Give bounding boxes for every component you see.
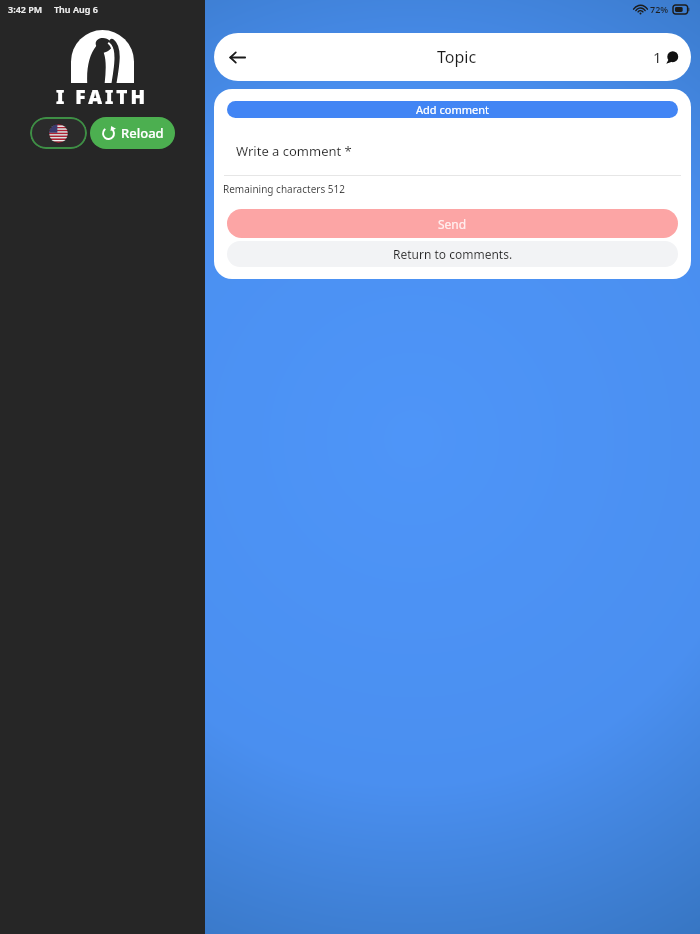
button[interactable]: Back <box>214 33 260 81</box>
staticText: Topic <box>437 46 477 68</box>
staticText: Add comment <box>416 102 489 117</box>
staticText: 3:42 PM <box>8 3 43 15</box>
staticText: 1 <box>653 47 662 67</box>
staticText: Thu Aug 6 <box>54 3 98 15</box>
button[interactable]: Change language <box>30 117 87 149</box>
staticText: Remaining characters 512 <box>223 182 345 196</box>
button[interactable]: Send <box>227 209 678 238</box>
button[interactable]: Reload <box>90 117 175 149</box>
staticText: I FAITH <box>56 84 149 110</box>
staticText: Reload <box>121 124 164 142</box>
button[interactable]: 1 <box>653 47 679 67</box>
button[interactable]: Add comment <box>227 101 678 118</box>
staticText: Send <box>438 216 467 232</box>
button[interactable]: Return to comments. <box>227 241 678 267</box>
staticText: Write a comment * <box>236 142 352 160</box>
staticText: Return to comments. <box>393 246 513 262</box>
staticText: 72% <box>650 3 669 15</box>
